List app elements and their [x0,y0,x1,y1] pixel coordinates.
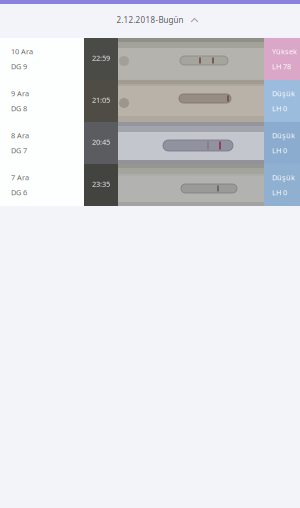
staticText: Düşük [272,88,295,98]
staticText: LH 0 [272,187,287,197]
staticText: 21:05 [92,95,110,105]
staticText: 7 Ara [11,172,29,182]
staticText: 10 Ara [11,46,33,56]
staticText: LH 78 [272,61,291,71]
staticText: DG 7 [11,145,27,155]
staticText: 2.12.2018-Bugün [116,15,183,25]
staticText: Yüksek [272,46,297,56]
staticText: LH 0 [272,103,287,113]
button[interactable]: 10 Ara [0,38,300,80]
staticText: 22:59 [92,53,110,63]
staticText: 8 Ara [11,130,29,140]
staticText: LH 0 [272,145,287,155]
button[interactable]: 7 Ara [0,164,300,206]
staticText: DG 9 [11,61,27,71]
staticText: Düşük [272,130,295,140]
staticText: 9 Ara [11,88,29,98]
staticText: 20:45 [92,137,110,147]
button[interactable]: 2.12.2018-Bugün [0,4,300,38]
button[interactable]: 9 Ara [0,80,300,122]
button[interactable]: 8 Ara [0,122,300,164]
staticText: DG 8 [11,103,27,113]
staticText: DG 6 [11,187,27,197]
staticText: 23:35 [92,179,110,189]
staticText: Düşük [272,172,295,182]
